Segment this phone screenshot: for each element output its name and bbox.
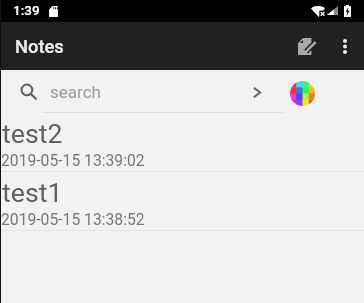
staticText: 1:39 [13, 2, 40, 18]
staticText: Notes [15, 36, 64, 57]
staticText: test2 [2, 118, 63, 149]
button[interactable]: test2 [0, 113, 364, 172]
staticText: search [50, 82, 101, 102]
staticText: test1 [2, 177, 63, 208]
staticText: 2019-05-15 13:39:02 [1, 151, 145, 169]
button[interactable]: Account [290, 81, 315, 106]
button[interactable]: More options [326, 27, 364, 65]
button[interactable]: New note [288, 27, 326, 65]
button[interactable]: test1 [0, 172, 364, 231]
staticText: 2019-05-15 13:38:52 [1, 210, 145, 228]
